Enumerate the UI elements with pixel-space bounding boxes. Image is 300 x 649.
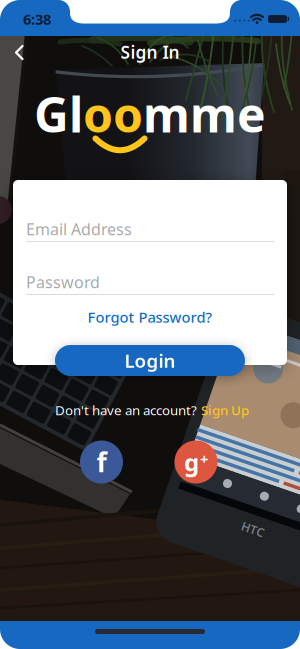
staticText: Email Address [26, 218, 132, 240]
button[interactable]: f [80, 440, 123, 483]
staticText: Don't have an account? [55, 401, 197, 419]
staticText: Forgot Password? [87, 307, 212, 327]
button[interactable]: Forgot Password? [87, 307, 212, 327]
staticText: g [184, 446, 199, 478]
staticText: Login [124, 348, 175, 373]
staticText: f [96, 444, 106, 480]
staticText: oo [83, 82, 143, 146]
button[interactable] [4, 38, 32, 66]
staticText: HTC [269, 526, 293, 542]
staticText: mme [143, 82, 266, 146]
staticText: Sign Up [201, 401, 249, 419]
staticText: Sign In [120, 40, 179, 63]
staticText: + [200, 449, 208, 469]
staticText: Gl [34, 82, 83, 146]
button[interactable]: Login [55, 345, 245, 376]
button[interactable]: Don't have an account? [55, 401, 249, 419]
button[interactable]: g [174, 440, 217, 483]
staticText: 6:38 [23, 9, 51, 29]
staticText: Password [26, 271, 100, 293]
